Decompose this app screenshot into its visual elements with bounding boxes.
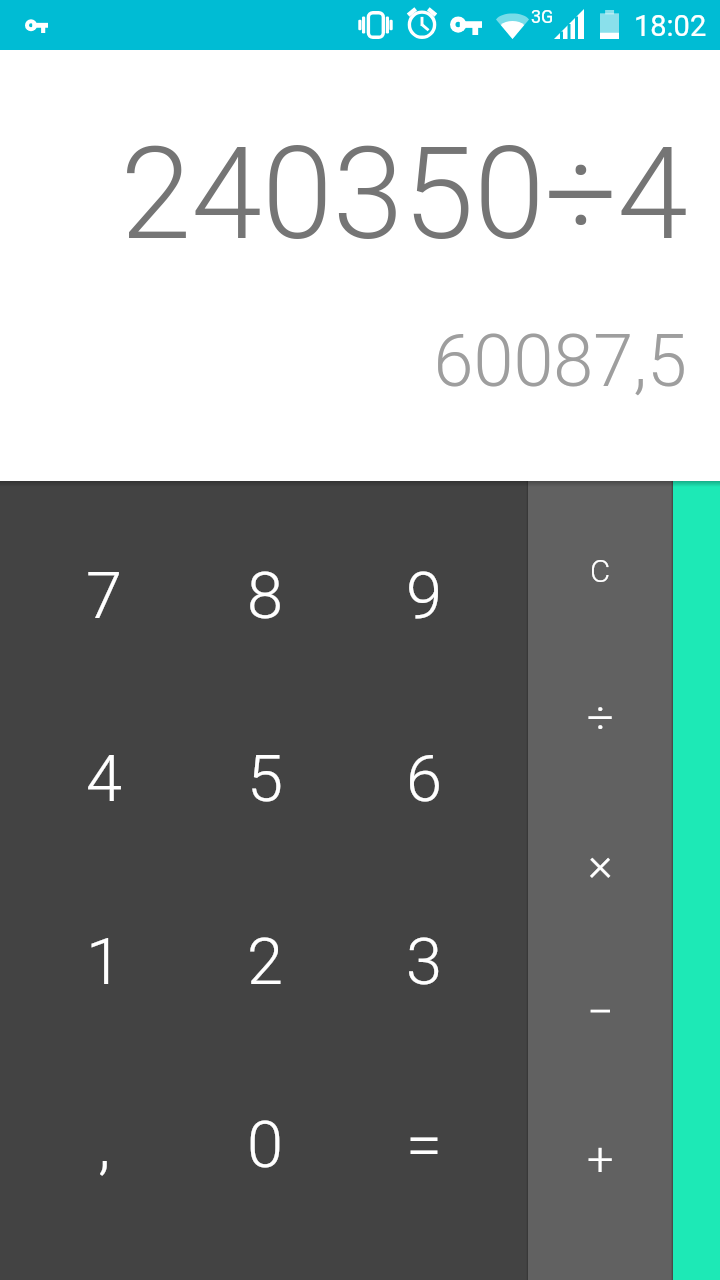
button[interactable]: = (352, 1053, 528, 1280)
staticText: + (587, 1131, 614, 1186)
staticText: 8 (247, 558, 284, 634)
button[interactable]: + (528, 1085, 673, 1280)
button[interactable]: 5 (176, 687, 352, 870)
staticText: 3G (531, 6, 554, 27)
staticText: C (590, 553, 611, 589)
button[interactable]: ÷ (528, 644, 673, 791)
staticText: 3 (406, 924, 443, 1000)
button[interactable]: − (528, 938, 673, 1085)
button[interactable]: , (0, 1053, 176, 1280)
staticText: 240350÷4 (0, 120, 688, 269)
staticText: 6 (406, 741, 443, 817)
staticText: − (587, 984, 614, 1039)
button[interactable]: 3 (352, 870, 528, 1053)
button[interactable]: 2 (176, 870, 352, 1053)
staticText: 0 (247, 1107, 284, 1183)
staticText: 9 (406, 558, 443, 634)
staticText: 60087,5 (0, 319, 687, 403)
button[interactable]: 0 (176, 1053, 352, 1280)
staticText: 7 (86, 558, 123, 634)
button[interactable]: VPN (25, 19, 48, 33)
staticText: 2 (247, 924, 284, 1000)
staticText: = (406, 1107, 442, 1183)
staticText: , (98, 1107, 111, 1183)
staticText: ÷ (587, 690, 614, 745)
button[interactable]: 8 (176, 481, 352, 687)
button[interactable]: 4 (0, 687, 176, 870)
button[interactable]: 7 (0, 481, 176, 687)
button[interactable]: × (528, 791, 673, 938)
staticText: 5 (247, 741, 284, 817)
button[interactable]: 9 (352, 481, 528, 687)
staticText: × (588, 836, 613, 891)
staticText: 18:02 (634, 9, 707, 43)
staticText: 1 (86, 924, 123, 1000)
button[interactable]: 1 (0, 870, 176, 1053)
button[interactable]: C (528, 481, 673, 644)
button[interactable]: 6 (352, 687, 528, 870)
staticText: 4 (86, 741, 123, 817)
